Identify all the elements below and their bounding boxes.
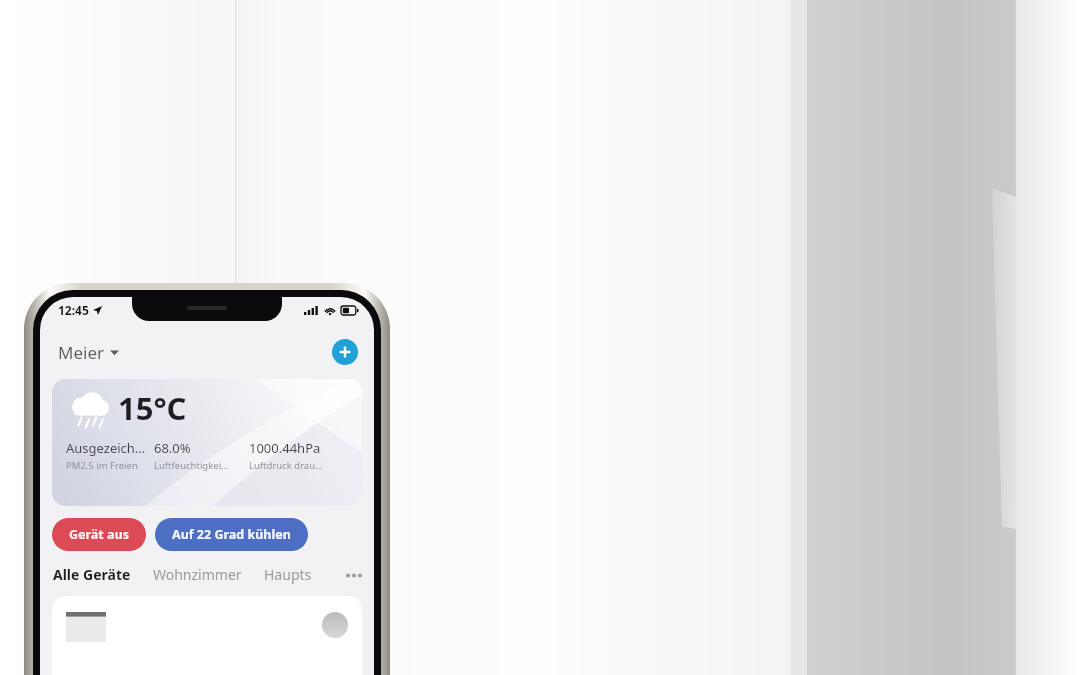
staticText: Auf 22 Grad kühlen (172, 526, 291, 543)
button[interactable]: Meier (56, 339, 121, 366)
staticText: Meier (58, 341, 105, 364)
staticText: Wohnzimmer (153, 565, 242, 584)
staticText: 12:45 (58, 302, 89, 318)
button[interactable]: 15°C (52, 379, 362, 506)
staticText: Luftdruck drau… (249, 459, 323, 472)
staticText: 1000.44hPa (249, 439, 321, 457)
button[interactable]: Gerät aus (52, 518, 146, 551)
button[interactable] (52, 596, 362, 675)
staticText: Gerät aus (69, 526, 129, 543)
button[interactable]: Gerät hinzufügen (332, 339, 358, 365)
staticText: Ausgezeich… (66, 439, 146, 457)
staticText: Haupts (264, 565, 312, 584)
button[interactable]: Wohnzimmer (153, 563, 242, 586)
button[interactable]: Alle Geräte (53, 563, 131, 586)
staticText: Luftfeuchtigkei… (154, 459, 229, 472)
button[interactable]: Weitere Räume (344, 565, 364, 585)
staticText: PM2,5 im Freien (66, 459, 138, 472)
staticText: 68.0% (154, 439, 191, 457)
button[interactable]: Auf 22 Grad kühlen (155, 518, 308, 551)
button[interactable]: Haupts (264, 563, 312, 586)
staticText: Alle Geräte (53, 565, 131, 584)
staticText: 15°C (118, 387, 187, 429)
